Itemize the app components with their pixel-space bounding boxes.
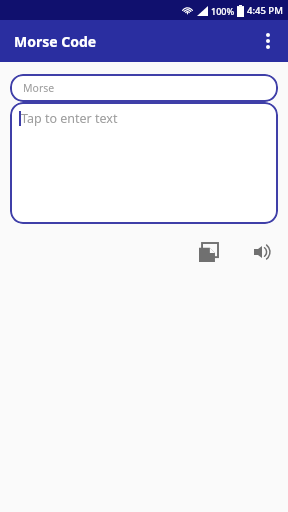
button[interactable]: More options: [248, 21, 288, 61]
button[interactable]: Copy: [191, 235, 225, 269]
button[interactable]: Tap to enter text: [10, 102, 278, 224]
button[interactable]: Morse: [10, 74, 278, 102]
staticText: 4:45 PM: [247, 4, 283, 17]
staticText: Tap to enter text: [21, 110, 118, 127]
button[interactable]: Play sound: [247, 235, 281, 269]
staticText: Morse: [23, 81, 55, 95]
staticText: Morse Code: [14, 32, 97, 51]
staticText: 100%: [211, 5, 235, 17]
